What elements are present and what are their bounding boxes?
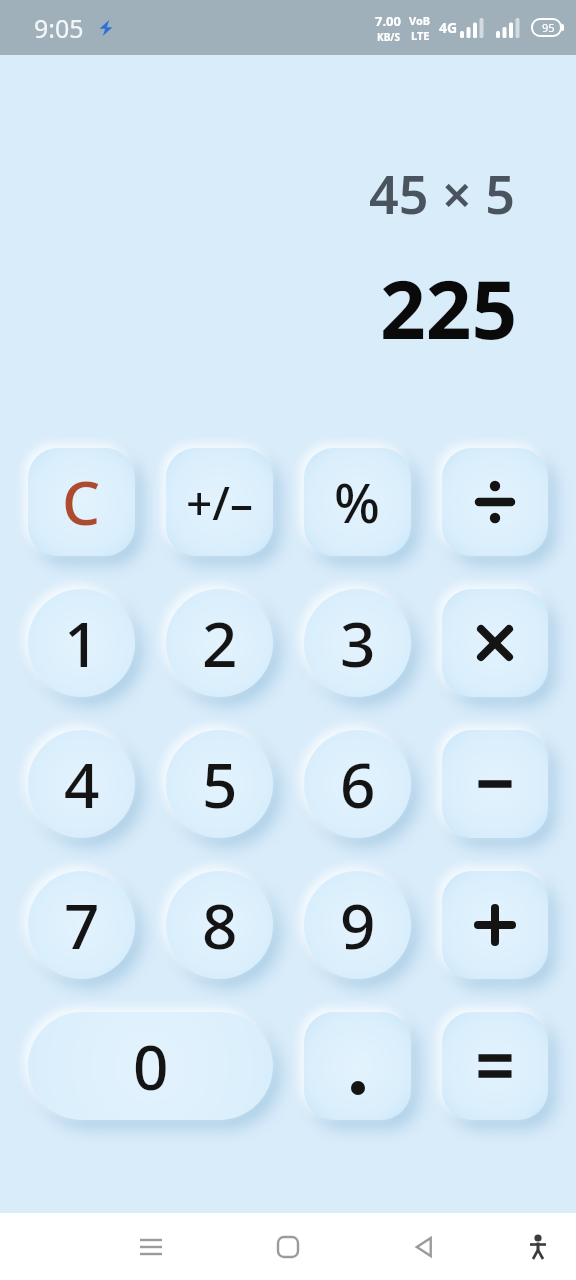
staticText: 9:05: [34, 11, 84, 45]
button[interactable]: +/–: [166, 448, 273, 556]
button[interactable]: 1: [28, 589, 135, 697]
staticText: 1: [64, 601, 100, 685]
staticText: 9: [340, 883, 376, 967]
staticText: 4: [64, 742, 100, 826]
button[interactable]: 7: [28, 871, 135, 979]
button[interactable]: [442, 589, 548, 697]
staticText: 2: [202, 601, 238, 685]
button[interactable]: [442, 1012, 548, 1120]
button[interactable]: 3: [304, 589, 411, 697]
staticText: 6: [340, 742, 376, 826]
staticText: 3: [340, 601, 376, 685]
staticText: %: [334, 465, 381, 539]
button[interactable]: %: [304, 448, 411, 556]
staticText: 4G: [439, 18, 458, 37]
staticText: 225: [380, 253, 518, 362]
staticText: 8: [202, 883, 238, 967]
button[interactable]: [304, 1012, 411, 1120]
button[interactable]: [525, 1234, 551, 1260]
button[interactable]: 0: [28, 1012, 273, 1120]
button[interactable]: [442, 730, 548, 838]
button[interactable]: 4: [28, 730, 135, 838]
staticText: +/–: [186, 471, 254, 534]
button[interactable]: C: [28, 448, 135, 556]
button[interactable]: 9: [304, 871, 411, 979]
button[interactable]: [139, 1235, 163, 1259]
button[interactable]: 5: [166, 730, 273, 838]
staticText: 0: [133, 1024, 169, 1108]
staticText: 45 × 5: [369, 158, 516, 229]
staticText: 5: [202, 742, 238, 826]
staticText: 95: [542, 20, 555, 35]
button[interactable]: 8: [166, 871, 273, 979]
button[interactable]: 2: [166, 589, 273, 697]
staticText: 7: [64, 883, 100, 967]
button[interactable]: [442, 871, 548, 979]
staticText: LTE: [411, 28, 430, 43]
staticText: VoB: [409, 13, 431, 28]
button[interactable]: [412, 1235, 436, 1259]
staticText: C: [62, 461, 101, 543]
button[interactable]: 6: [304, 730, 411, 838]
staticText: KB/S: [377, 30, 400, 44]
button[interactable]: [276, 1235, 300, 1259]
staticText: 7.00: [375, 12, 401, 30]
button[interactable]: [442, 448, 548, 556]
